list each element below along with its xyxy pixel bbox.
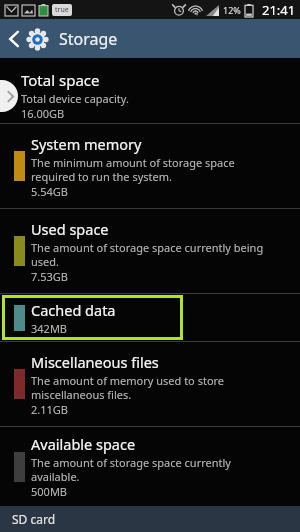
staticText: true [55,5,69,15]
staticText: The minimum amount of storage space requ… [31,155,235,184]
staticText: Total device capacity. [21,91,129,106]
button[interactable]: SD card [0,506,300,532]
staticText: The amount of memory used to store misce… [31,373,225,402]
staticText: Storage [59,28,118,50]
staticText: Available space [31,434,136,454]
staticText: Miscellaneous files [31,352,159,372]
button[interactable]: Miscellaneous files [0,342,300,426]
staticText: Total space [21,70,100,90]
button[interactable]: System memory [0,124,300,208]
staticText: The amount of storage space currently av… [31,455,231,484]
staticText: Used space [31,219,109,239]
button[interactable]: Navigate up [0,19,300,58]
staticText: 2.11GB [31,402,68,417]
button[interactable]: Available space [0,427,300,506]
staticText: 16.00GB [21,106,65,121]
staticText: 342MB [31,321,68,336]
staticText: 21:41 [262,1,296,19]
staticText: 500MB [31,484,68,499]
staticText: Cached data [31,300,116,320]
button[interactable]: Cached data [0,294,300,341]
staticText: 7.53GB [31,269,68,284]
staticText: SD card [12,511,56,527]
button[interactable]: Total space [0,68,300,123]
button[interactable]: Used space [0,209,300,293]
staticText: 5.54GB [31,184,68,199]
staticText: System memory [31,134,142,154]
staticText: The amount of storage space currently be… [31,240,264,269]
staticText: 12% [223,4,241,16]
